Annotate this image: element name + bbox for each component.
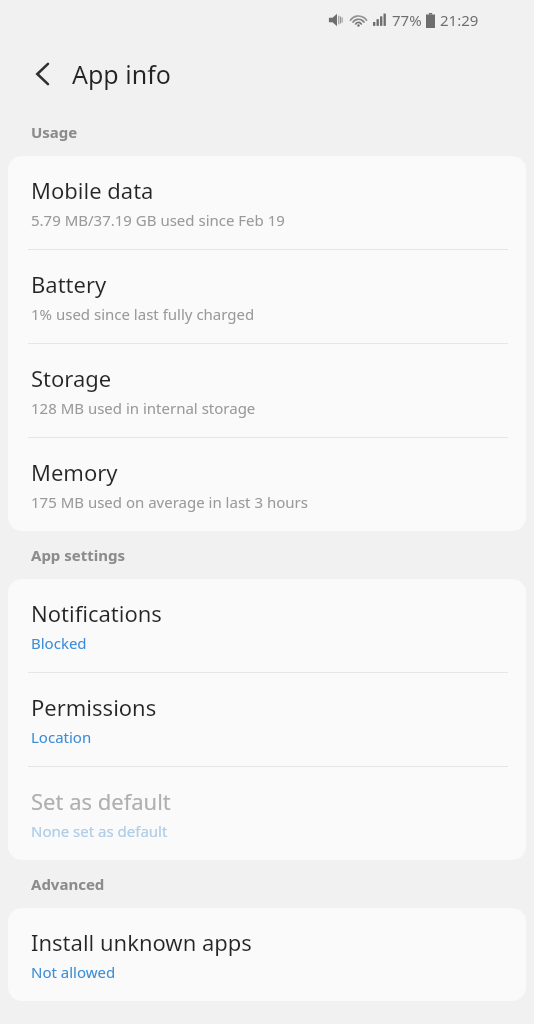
staticText: None set as default bbox=[31, 821, 168, 841]
staticText: App info bbox=[72, 57, 171, 91]
button[interactable]: Storage bbox=[8, 344, 526, 437]
staticText: 1% used since last fully charged bbox=[31, 304, 255, 324]
staticText: Memory bbox=[31, 457, 118, 487]
button[interactable]: Install unknown apps bbox=[8, 908, 526, 1001]
staticText: Install unknown apps bbox=[31, 927, 252, 957]
staticText: 128 MB used in internal storage bbox=[31, 398, 256, 418]
button[interactable]: Battery bbox=[8, 250, 526, 343]
button[interactable]: Mobile data bbox=[8, 156, 526, 249]
staticText: Permissions bbox=[31, 692, 157, 722]
staticText: Set as default bbox=[31, 786, 171, 816]
staticText: Mobile data bbox=[31, 175, 154, 205]
staticText: 77% bbox=[392, 10, 422, 30]
staticText: 175 MB used on average in last 3 hours bbox=[31, 492, 308, 512]
button[interactable]: Permissions bbox=[8, 673, 526, 766]
staticText: Location bbox=[31, 727, 92, 747]
staticText: App settings bbox=[31, 545, 125, 565]
staticText: 21:29 bbox=[440, 10, 479, 30]
staticText: Notifications bbox=[31, 598, 162, 628]
button[interactable]: Back bbox=[20, 52, 64, 96]
button[interactable]: Memory bbox=[8, 438, 526, 531]
staticText: Usage bbox=[31, 122, 78, 142]
staticText: Not allowed bbox=[31, 962, 116, 982]
staticText: 5.79 MB/37.19 GB used since Feb 19 bbox=[31, 210, 285, 230]
staticText: Battery bbox=[31, 269, 107, 299]
staticText: Advanced bbox=[31, 874, 105, 894]
button[interactable]: Set as default bbox=[8, 767, 526, 860]
staticText: Storage bbox=[31, 363, 112, 393]
staticText: Blocked bbox=[31, 633, 87, 653]
button[interactable]: Notifications bbox=[8, 579, 526, 672]
